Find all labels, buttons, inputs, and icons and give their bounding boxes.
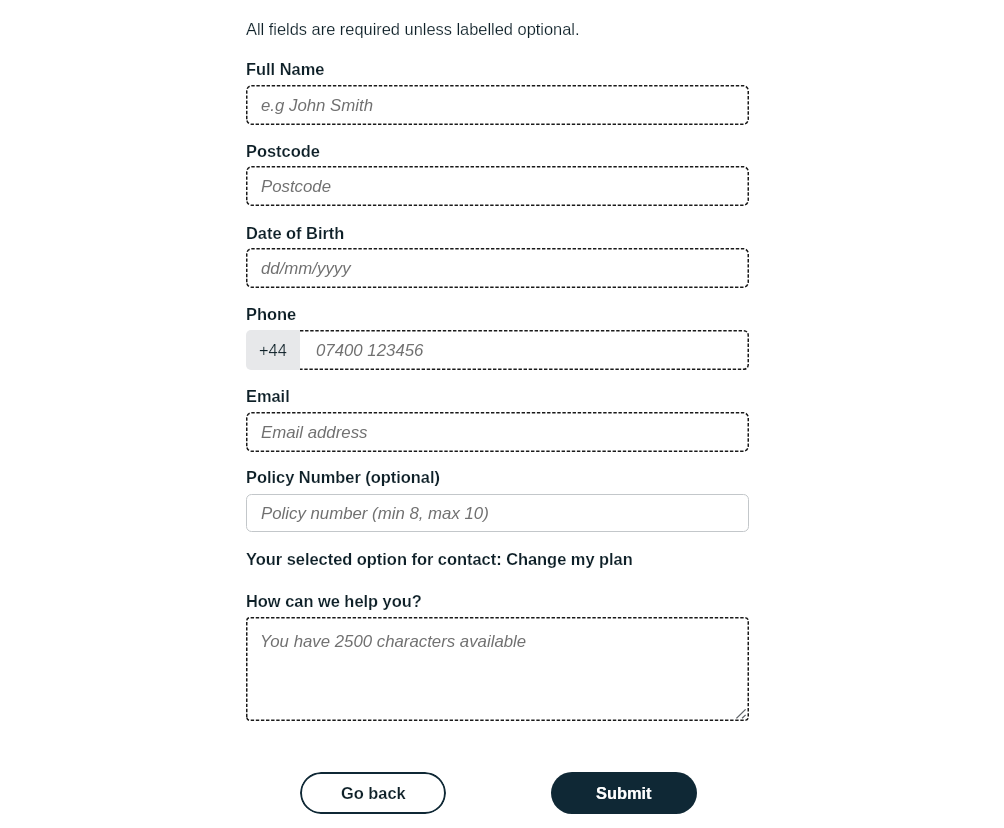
button[interactable]: Full Name (246, 85, 749, 125)
staticText: Date of Birth (246, 224, 345, 242)
staticText: Your selected option for contact: Change… (246, 550, 633, 568)
button[interactable]: Postcode (246, 166, 749, 206)
staticText: Phone (246, 305, 297, 323)
staticText: Go back (341, 784, 406, 802)
button[interactable]: Email (246, 412, 749, 452)
button[interactable]: Go back (300, 772, 446, 814)
staticText: Postcode (261, 177, 332, 196)
staticText: Email address (261, 423, 368, 442)
staticText: All fields are required unless labelled … (246, 20, 580, 38)
staticText: Submit (596, 784, 652, 802)
staticText: +44 (259, 341, 287, 359)
staticText: dd/mm/yyyy (261, 259, 351, 278)
staticText: Postcode (246, 142, 320, 160)
button[interactable]: Submit (551, 772, 697, 814)
staticText: Policy Number (optional) (246, 468, 440, 486)
staticText: How can we help you? (246, 592, 422, 610)
staticText: Policy number (min 8, max 10) (261, 504, 489, 523)
button[interactable]: Phone number (300, 330, 749, 370)
button[interactable]: Policy Number (optional) (246, 494, 749, 532)
button[interactable]: +44 (246, 330, 300, 370)
staticText: 07400 123456 (316, 341, 424, 360)
button[interactable]: How can we help you? (246, 617, 749, 721)
staticText: Full Name (246, 60, 325, 78)
staticText: e.g John Smith (261, 96, 374, 115)
staticText: Email (246, 387, 290, 405)
staticText: You have 2500 characters available (260, 632, 527, 651)
button[interactable]: Date of Birth (246, 248, 749, 288)
